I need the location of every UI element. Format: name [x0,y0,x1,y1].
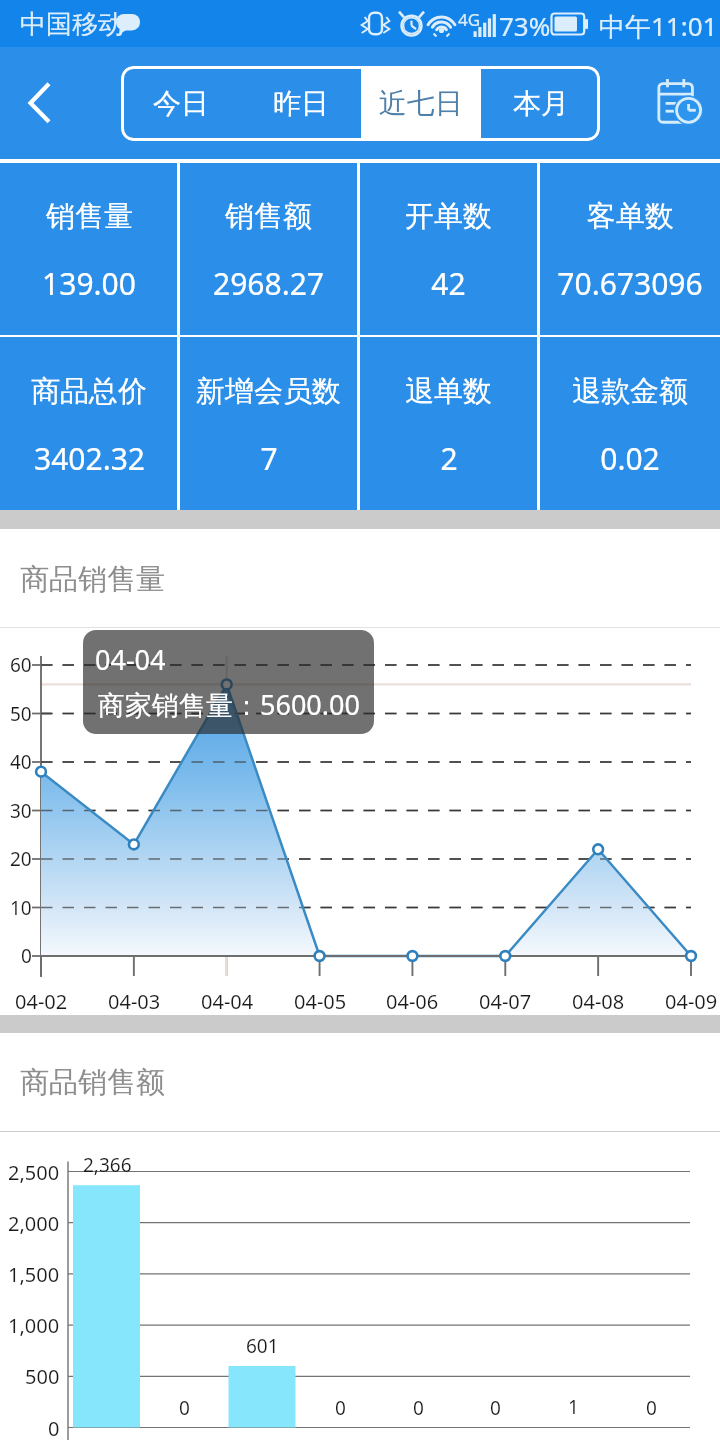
staticText: 04-04 [201,988,254,1015]
button[interactable]: Select date range [643,66,715,138]
staticText: 3402.32 [34,438,145,479]
staticText: 601 [246,1333,279,1359]
staticText: 0 [179,1395,190,1421]
staticText: 04-09 [665,988,718,1015]
staticText: 0 [413,1395,424,1421]
button[interactable]: 今日 [121,66,241,141]
staticText: 10 [10,895,32,921]
staticText: 70.673096 [557,263,703,304]
staticText: 2,500 [8,1159,60,1186]
staticText: 0 [21,943,32,969]
staticText: 500 [25,1363,60,1390]
staticText: 1 [568,1394,579,1420]
staticText: 04-06 [386,988,439,1015]
staticText: 今日 [153,86,209,121]
staticText: 商品销售额 [20,1064,165,1101]
button[interactable]: 近七日 [361,66,481,141]
staticText: 04-04 [95,641,166,678]
button[interactable]: 昨日 [241,66,361,141]
staticText: 销售额 [225,198,312,235]
staticText: 04-08 [572,988,625,1015]
staticText: 1,500 [8,1261,60,1288]
staticText: 商家销售量：5600.00 [98,686,360,723]
staticText: 退款金额 [572,373,688,410]
staticText: 04-03 [108,988,161,1015]
button[interactable]: 退款金额 [540,337,720,510]
staticText: 开单数 [405,198,492,235]
staticText: 中国移动 [20,8,124,41]
staticText: 近七日 [379,86,463,121]
staticText: 40 [10,749,32,775]
staticText: 新增会员数 [196,373,341,410]
staticText: 昨日 [273,86,329,121]
button[interactable]: 新增会员数 [180,337,357,510]
staticText: 30 [10,798,32,824]
staticText: 2 [440,438,458,479]
button[interactable]: 客单数 [540,163,720,335]
staticText: 7 [260,438,278,479]
staticText: 中午11:01 [599,8,718,44]
staticText: 0 [335,1395,346,1421]
staticText: 商品销售量 [20,561,165,598]
staticText: 2,366 [83,1152,132,1178]
staticText: 50 [10,701,32,727]
staticText: 60 [10,652,32,678]
staticText: 本月 [513,86,569,121]
staticText: 20 [10,846,32,872]
staticText: 2,000 [8,1210,60,1237]
staticText: 1,000 [8,1312,60,1339]
staticText: 0 [490,1395,501,1421]
staticText: 0.02 [600,438,660,479]
staticText: 4G [458,8,481,31]
staticText: 商品总价 [31,373,147,410]
staticText: 销售量 [46,198,133,235]
staticText: 42 [431,263,466,304]
button[interactable]: 销售量 [0,163,177,335]
staticText: 0 [48,1415,60,1440]
staticText: 04-07 [479,988,532,1015]
staticText: 2968.27 [213,263,324,304]
staticText: 客单数 [587,198,674,235]
button[interactable]: 本月 [481,66,600,141]
staticText: 0 [646,1395,657,1421]
button[interactable]: 退单数 [360,337,537,510]
button[interactable]: 开单数 [360,163,537,335]
staticText: 04-02 [15,988,68,1015]
button[interactable]: 销售额 [180,163,357,335]
staticText: 73% [499,8,551,43]
staticText: 139.00 [42,263,136,304]
button[interactable]: 商品总价 [0,337,177,510]
staticText: 04-05 [294,988,347,1015]
staticText: 退单数 [405,373,492,410]
button[interactable]: Back [3,67,75,139]
